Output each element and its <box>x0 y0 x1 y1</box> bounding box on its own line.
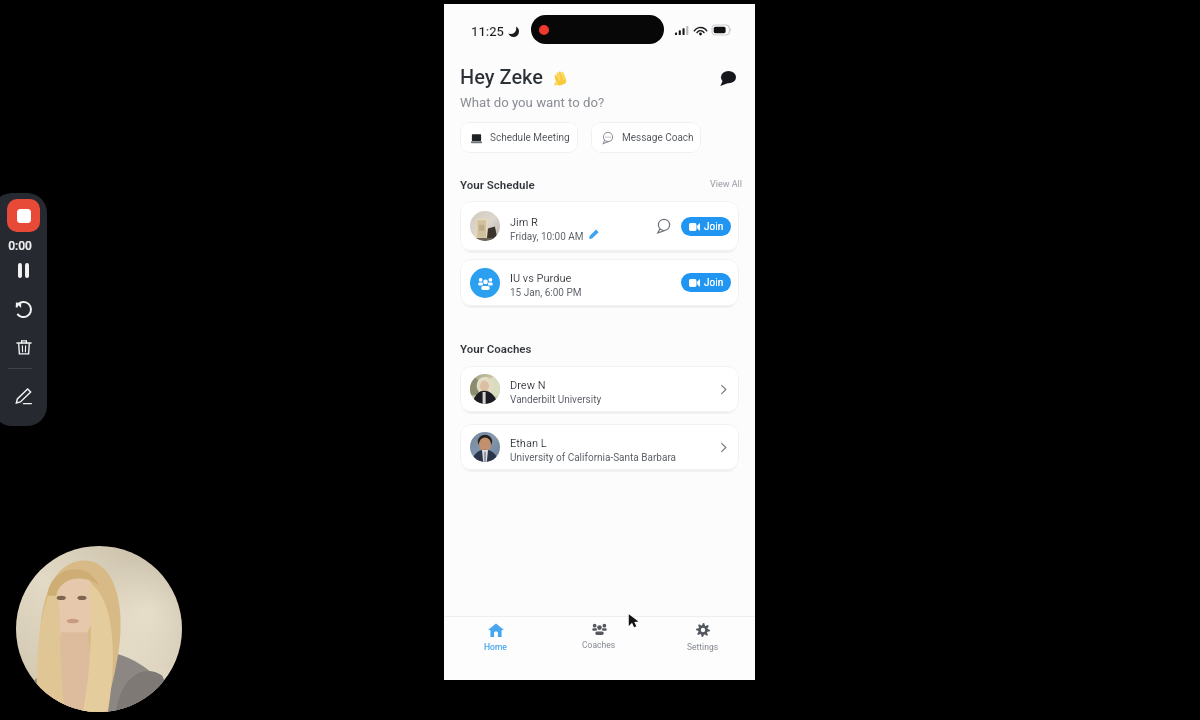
button[interactable]: Delete <box>11 334 36 359</box>
staticText: 0:00 <box>8 239 32 253</box>
staticText: Friday, 10:00 AM <box>510 231 584 243</box>
staticText: Join <box>704 277 724 289</box>
button[interactable]: Message <box>653 215 675 237</box>
button[interactable]: Join <box>681 217 731 236</box>
button[interactable]: Join <box>681 273 731 292</box>
staticText: IU vs Purdue <box>510 272 572 285</box>
staticText: Your Coaches <box>460 342 532 355</box>
button[interactable]: Schedule Meeting <box>460 122 578 153</box>
staticText: Join <box>704 221 724 233</box>
staticText: Ethan L <box>510 437 547 450</box>
button[interactable]: Restart <box>11 297 36 322</box>
staticText: University of California-Santa Barbara <box>510 452 677 464</box>
staticText: Vanderbilt University <box>510 394 602 406</box>
staticText: Jim R <box>510 216 538 229</box>
button[interactable]: Drew N <box>460 366 739 412</box>
button[interactable]: Ethan L <box>460 424 739 470</box>
button[interactable]: Pause <box>11 258 36 283</box>
button[interactable]: IU vs Purdue <box>460 259 739 306</box>
staticText: Home <box>484 642 507 652</box>
button[interactable]: Coaches <box>547 617 651 669</box>
button[interactable]: Message Coach <box>591 122 701 153</box>
staticText: View All <box>710 179 742 190</box>
staticText: 11:25 <box>471 24 504 39</box>
staticText: Your Schedule <box>460 178 535 191</box>
button[interactable]: Draw <box>11 384 36 409</box>
button[interactable]: Home <box>444 617 547 669</box>
staticText: Drew N <box>510 379 546 392</box>
staticText: Schedule Meeting <box>490 132 570 144</box>
button[interactable]: Messages <box>714 64 742 92</box>
staticText: Message Coach <box>622 132 694 144</box>
button[interactable]: View All <box>710 179 742 190</box>
button[interactable]: Settings <box>651 617 755 669</box>
staticText: 15 Jan, 6:00 PM <box>510 287 582 299</box>
staticText: Coaches <box>582 640 616 650</box>
staticText: Settings <box>687 642 719 652</box>
button[interactable]: Stop recording <box>7 199 40 232</box>
staticText: Hey Zeke <box>460 65 544 88</box>
button[interactable]: Jim R <box>460 201 739 251</box>
staticText: What do you want to do? <box>460 95 605 110</box>
